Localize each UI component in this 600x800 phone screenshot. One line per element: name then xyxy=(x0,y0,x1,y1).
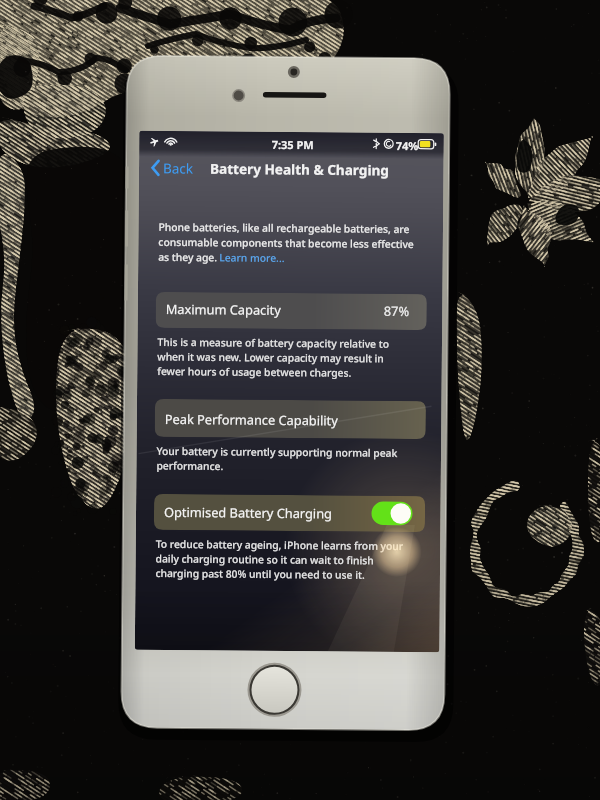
button[interactable]: Battery Health and Charging screen xyxy=(0,0,600,800)
